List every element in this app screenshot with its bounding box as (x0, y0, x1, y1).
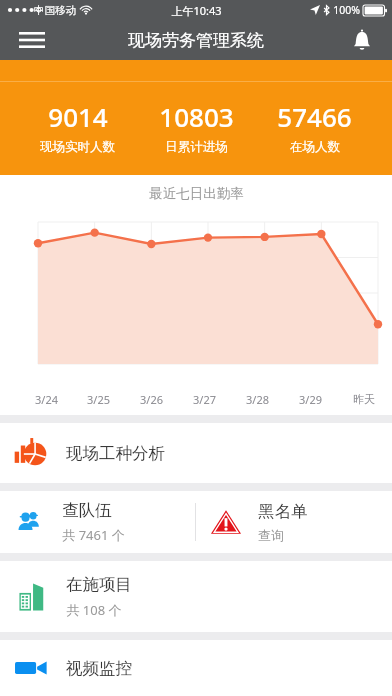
button[interactable]: 现场工种分析 (0, 423, 392, 483)
staticText: 100% (333, 3, 360, 17)
button[interactable]: 视频监控 (0, 640, 392, 696)
staticText: 9014 (48, 99, 108, 134)
button[interactable] (0, 212, 392, 390)
staticText: 现场工种分析 (66, 443, 165, 464)
button[interactable]: 在施项目 (0, 561, 392, 632)
staticText: 共 7461 个 (62, 526, 125, 544)
staticText: 3/29 (299, 392, 322, 407)
staticText: 日累计进场 (165, 139, 228, 155)
staticText: 在场人数 (290, 139, 340, 155)
staticText: 上午10:43 (171, 3, 222, 18)
staticText: 查询 (258, 527, 284, 543)
staticText: 最近七日出勤率 (149, 185, 244, 202)
staticText: 10803 (159, 99, 234, 134)
staticText: 3/27 (193, 392, 216, 407)
staticText: 中国移动 (34, 4, 76, 17)
button[interactable]: Notifications (342, 20, 382, 60)
staticText: 现场劳务管理系统 (128, 30, 264, 51)
button[interactable]: 57466 (273, 99, 356, 155)
staticText: 现场实时人数 (40, 139, 115, 155)
staticText: 黑名单 (258, 501, 308, 522)
staticText: 在施项目 (66, 574, 132, 595)
button[interactable]: Menu (10, 20, 54, 60)
button[interactable]: 9014 (36, 99, 119, 155)
staticText: 查队伍 (62, 500, 112, 521)
button[interactable]: 查队伍 (0, 491, 195, 553)
button[interactable]: 10803 (155, 99, 238, 155)
staticText: 3/25 (87, 392, 110, 407)
staticText: 视频监控 (66, 658, 132, 679)
staticText: 共 108 个 (66, 601, 122, 619)
staticText: 3/28 (246, 392, 269, 407)
staticText: 57466 (277, 99, 352, 134)
staticText: 昨天 (353, 392, 375, 406)
button[interactable]: 黑名单 (196, 491, 392, 553)
staticText: 3/24 (35, 392, 58, 407)
staticText: 3/26 (140, 392, 163, 407)
